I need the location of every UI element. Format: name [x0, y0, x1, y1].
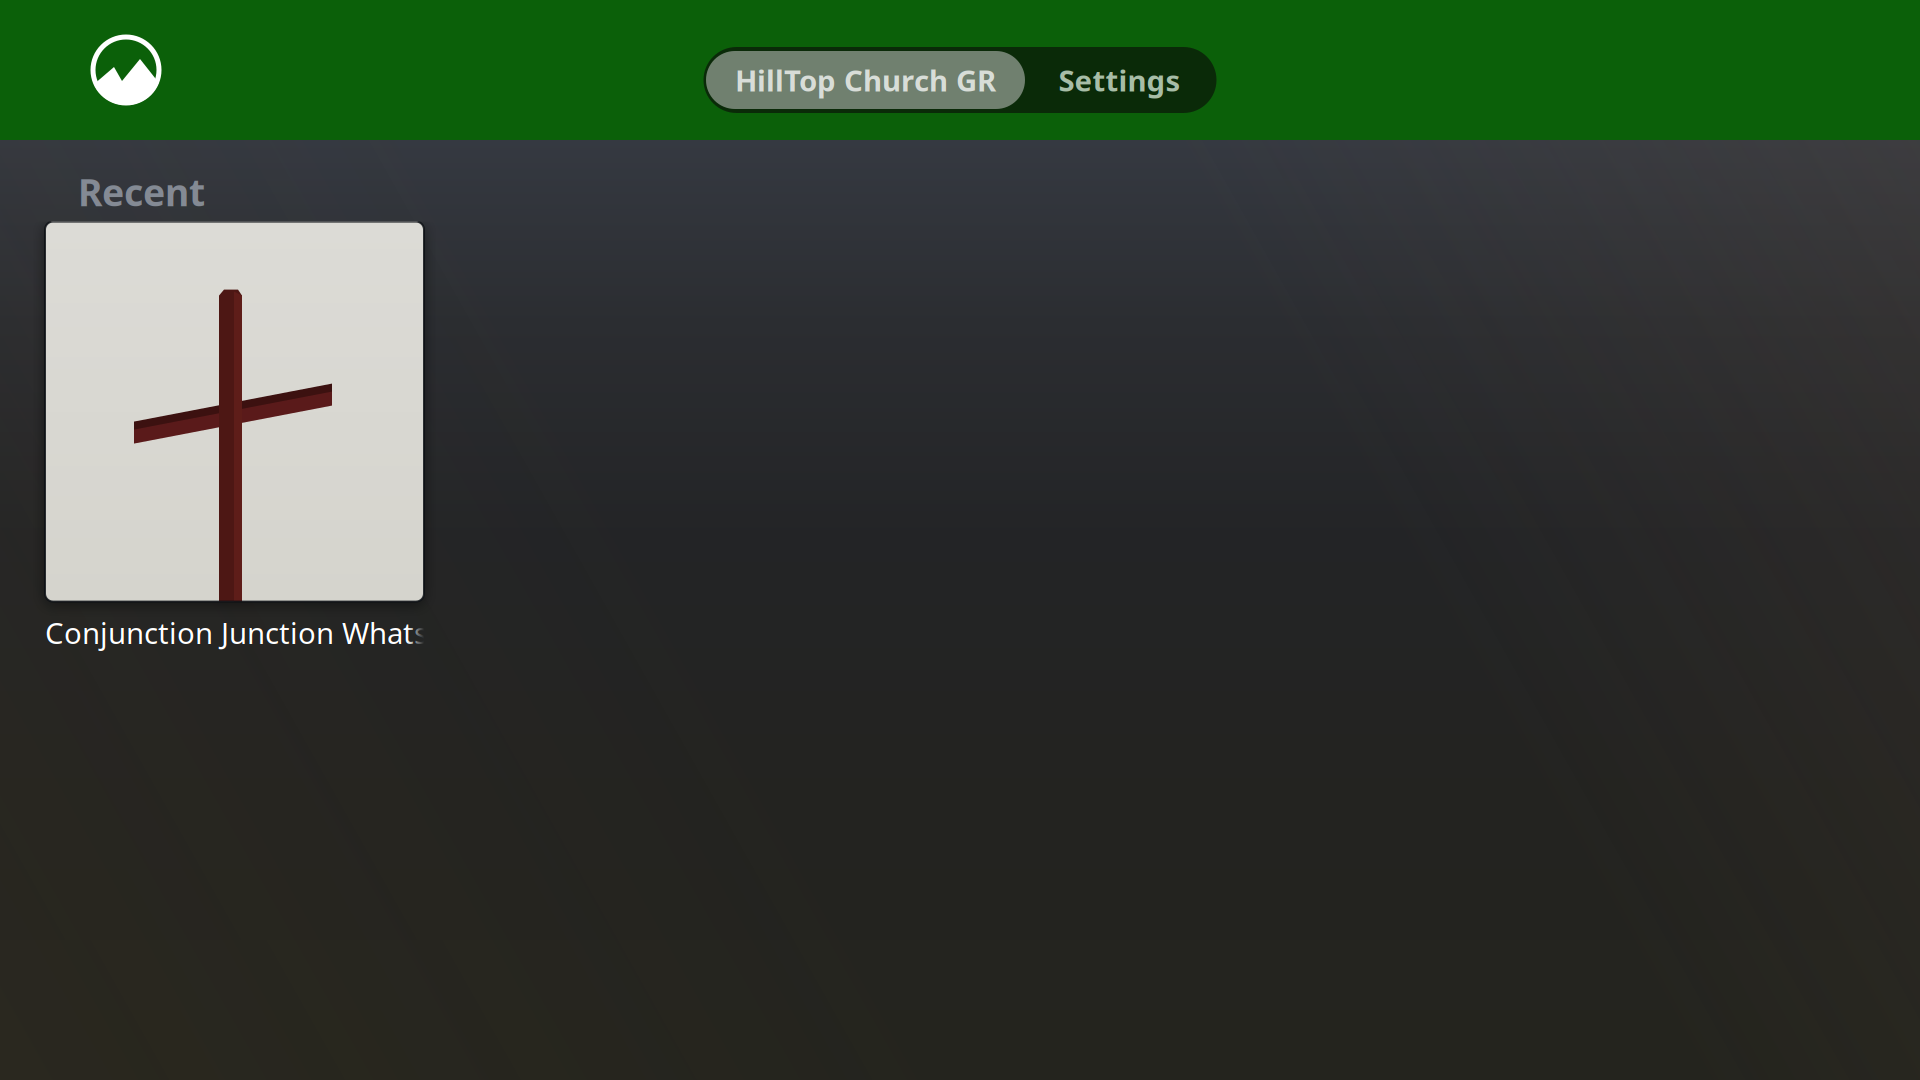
staticText: Recent	[78, 167, 205, 217]
button[interactable]: Conjunction Junction Whats Your Function	[45, 222, 424, 664]
button[interactable]: HillTop Church home	[91, 35, 161, 105]
staticText: Conjunction Junction Whats Your Function	[45, 613, 627, 652]
staticText: HillTop Church GR	[735, 60, 996, 99]
staticText: Settings	[1058, 60, 1180, 99]
button[interactable]: HillTop Church GR	[706, 51, 1025, 109]
button[interactable]: Settings	[1025, 51, 1214, 109]
